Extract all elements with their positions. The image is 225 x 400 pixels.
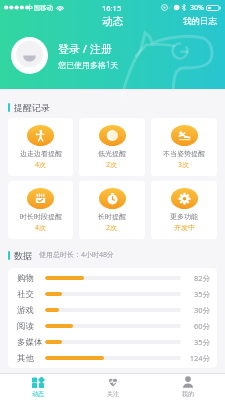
staticText: 中国移动 <box>27 4 53 12</box>
staticText: 我的日志 <box>183 16 217 26</box>
button[interactable]: 更多功能 <box>151 181 217 239</box>
button[interactable]: 时长时段提醒 <box>8 181 73 239</box>
staticText: 我的 <box>182 390 194 398</box>
staticText: 30% <box>190 3 204 13</box>
button[interactable]: 我的 <box>150 374 225 400</box>
button[interactable]: 动态 <box>0 374 75 400</box>
staticText: 35分 <box>187 337 210 347</box>
staticText: 数据 <box>14 250 32 261</box>
staticText: 16:15 <box>102 3 122 13</box>
button[interactable]: 低光提醒 <box>79 118 145 176</box>
staticText: 124分 <box>187 353 210 363</box>
staticText: 时长时段提醒 <box>20 212 62 221</box>
staticText: 82分 <box>187 273 210 283</box>
staticText: 4次 <box>35 160 47 170</box>
staticText: 开发中 <box>174 223 195 232</box>
button[interactable]: 边走边看提醒 <box>8 118 73 176</box>
staticText: 关注 <box>107 390 119 398</box>
button[interactable]: 不当姿势提醒 <box>151 118 217 176</box>
staticText: 登录 / 注册 <box>58 41 112 56</box>
staticText: 4次 <box>35 223 47 233</box>
staticText: 动态 <box>32 390 44 398</box>
staticText: 使用总时长：4小时48分 <box>39 250 115 260</box>
staticText: 购物 <box>17 273 43 284</box>
staticText: 长时提醒 <box>98 212 126 221</box>
button[interactable]: 我的日志 <box>175 13 225 29</box>
button[interactable]: 登录 / 注册 <box>11 37 225 74</box>
staticText: 阅读 <box>17 321 43 332</box>
staticText: 多媒体 <box>17 337 43 348</box>
button[interactable]: 长时提醒 <box>79 181 145 239</box>
staticText: 动态 <box>102 15 123 28</box>
staticText: 30分 <box>187 305 210 315</box>
staticText: 3次 <box>178 160 190 170</box>
staticText: 您已使用多格1天 <box>58 59 119 70</box>
staticText: 其他 <box>17 353 43 364</box>
staticText: 提醒记录 <box>14 102 50 113</box>
staticText: 35分 <box>187 289 210 299</box>
staticText: 社交 <box>17 289 43 300</box>
button[interactable]: 关注 <box>75 374 150 400</box>
staticText: 边走边看提醒 <box>20 149 62 158</box>
staticText: 更多功能 <box>170 212 198 221</box>
staticText: 2次 <box>106 223 118 233</box>
staticText: 不当姿势提醒 <box>163 149 205 158</box>
staticText: 2次 <box>106 160 118 170</box>
staticText: 低光提醒 <box>98 149 126 158</box>
staticText: 60分 <box>187 321 210 331</box>
staticText: 游戏 <box>17 305 43 316</box>
